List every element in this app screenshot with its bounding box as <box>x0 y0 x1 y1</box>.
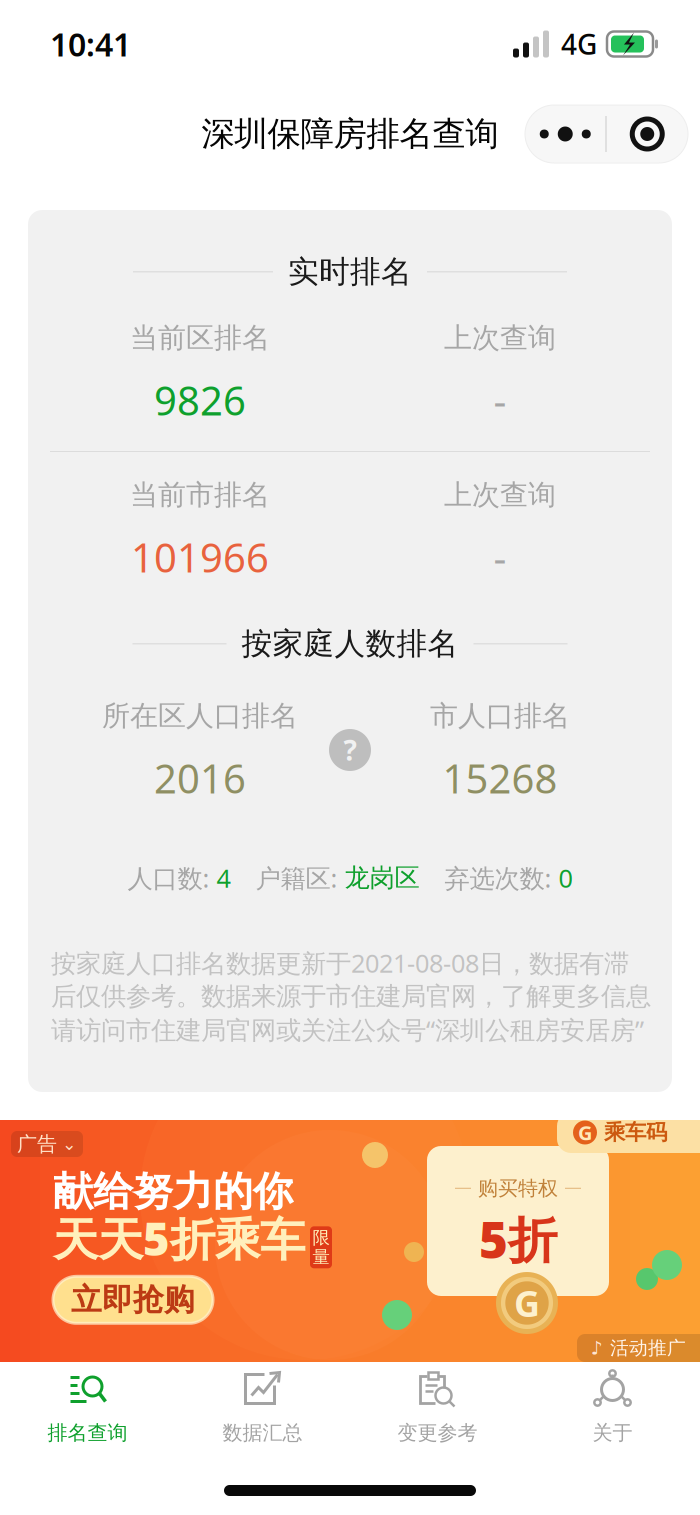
staticText: 活动推广 <box>610 1336 686 1359</box>
staticText: 当前市排名 <box>130 478 270 512</box>
staticText: 变更参考 <box>397 1420 477 1445</box>
staticText: 数据汇总 <box>222 1420 302 1445</box>
staticText: 2016 <box>154 751 246 804</box>
button[interactable]: 排名查询 <box>0 1351 175 1476</box>
staticText: 4 <box>216 861 230 895</box>
staticText: 量 <box>312 1246 329 1268</box>
staticText: 9826 <box>154 373 246 426</box>
staticText: 弃选次数: <box>419 861 558 895</box>
staticText: 限 <box>312 1227 329 1248</box>
staticText: 排名查询 <box>47 1420 127 1445</box>
staticText: 10:41 <box>50 23 131 65</box>
button[interactable]: 变更参考 <box>350 1351 525 1476</box>
staticText: ? <box>343 731 356 769</box>
staticText: 购买特权 <box>478 1176 558 1201</box>
staticText: 户籍区: <box>230 861 344 895</box>
staticText: 后仅供参考。数据来源于市住建局官网，了解更多信息 <box>51 981 651 1012</box>
staticText: 所在区人口排名 <box>102 699 298 733</box>
button[interactable]: 关于 <box>525 1351 700 1476</box>
staticText: 天天5折乘车 <box>53 1208 305 1268</box>
button[interactable]: Help about household-size ranking <box>322 722 378 778</box>
staticText: 献给努力的你 <box>53 1167 293 1216</box>
staticText: 市人口排名 <box>430 699 570 733</box>
button[interactable]: Close mini program <box>607 105 688 163</box>
staticText: 上次查询 <box>444 478 556 512</box>
staticText: 请访问市住建局官网或关注公众号“深圳公租房安居房” <box>51 1013 644 1046</box>
button[interactable]: 数据汇总 <box>175 1351 350 1476</box>
staticText: 按家庭人口排名数据更新于2021-08-08日，数据有滞 <box>51 946 629 980</box>
staticText: 乘车码 <box>604 1119 667 1146</box>
staticText: G <box>578 1119 592 1146</box>
staticText: 5折 <box>479 1206 557 1271</box>
staticText: 龙岗区 <box>344 862 419 893</box>
staticText: 4G <box>561 25 597 63</box>
staticText: 立即抢购 <box>71 1281 195 1319</box>
staticText: 当前区排名 <box>130 321 270 355</box>
staticText: 0 <box>558 861 572 895</box>
staticText: ⌄ <box>62 1134 77 1154</box>
button[interactable]: 购买特权 <box>0 1120 700 1362</box>
staticText: 人口数: <box>127 861 216 895</box>
staticText: 上次查询 <box>444 321 556 355</box>
staticText: 关于 <box>592 1420 632 1445</box>
staticText: 101966 <box>131 530 269 583</box>
staticText: 实时排名 <box>288 253 412 291</box>
staticText: ♪ <box>591 1337 603 1359</box>
staticText: 广告 <box>17 1132 57 1156</box>
staticText: 深圳保障房排名查询 <box>201 113 498 154</box>
staticText: 按家庭人数排名 <box>241 625 458 663</box>
staticText: - <box>493 373 506 426</box>
staticText: G <box>514 1279 540 1327</box>
staticText: 15268 <box>442 751 557 804</box>
button[interactable]: More <box>525 105 605 163</box>
staticText: - <box>493 530 506 583</box>
